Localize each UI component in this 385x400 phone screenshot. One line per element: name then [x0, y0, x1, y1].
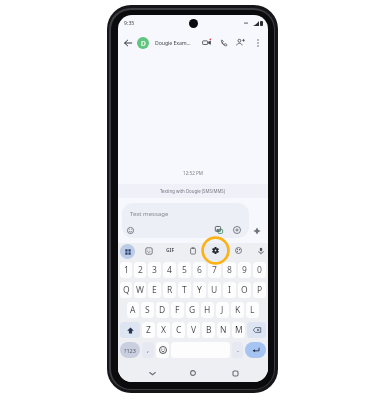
staticText: 12:52 PM: [118, 170, 268, 176]
staticText: V: [191, 324, 197, 336]
button[interactable]: Back: [144, 365, 160, 381]
staticText: 3: [152, 264, 157, 276]
button[interactable]: Stickers: [142, 244, 155, 257]
staticText: I: [228, 284, 231, 296]
staticText: 2: [138, 264, 143, 276]
button[interactable]: 2: [134, 262, 146, 278]
button[interactable]: Settings: [201, 236, 230, 265]
button[interactable]: Voice input: [254, 244, 267, 257]
staticText: A: [130, 304, 136, 316]
button[interactable]: J: [216, 302, 229, 318]
button[interactable]: 7: [208, 262, 221, 278]
button[interactable]: V: [187, 322, 200, 338]
button[interactable]: Emoji: [122, 222, 138, 238]
button[interactable]: 4: [163, 262, 176, 278]
button[interactable]: Y: [193, 282, 206, 298]
staticText: C: [176, 324, 182, 336]
button[interactable]: Emoji: [156, 342, 169, 358]
staticText: 9: [242, 264, 247, 276]
button[interactable]: 1: [120, 262, 132, 278]
button[interactable]: Shift: [120, 322, 140, 338]
button[interactable]: 8: [223, 262, 236, 278]
staticText: K: [235, 304, 241, 316]
button[interactable]: Keyboard modes: [120, 244, 135, 259]
button[interactable]: P: [253, 282, 266, 298]
button[interactable]: Themes: [232, 244, 245, 257]
staticText: P: [257, 284, 263, 296]
button[interactable]: Comma: [142, 342, 154, 358]
button[interactable]: Clipboard: [186, 244, 199, 257]
button[interactable]: GIF: [164, 244, 177, 257]
button[interactable]: 5: [178, 262, 191, 278]
button[interactable]: B: [202, 322, 215, 338]
button[interactable]: Photos: [211, 222, 227, 238]
staticText: M: [235, 324, 243, 336]
staticText: Y: [197, 284, 202, 296]
button[interactable]: Backspace: [247, 322, 266, 338]
staticText: Q: [123, 284, 130, 296]
staticText: ?123: [124, 347, 136, 354]
button[interactable]: E: [148, 282, 161, 298]
button[interactable]: O: [238, 282, 251, 298]
staticText: GIF: [166, 247, 175, 254]
button[interactable]: X: [157, 322, 170, 338]
button[interactable]: Period: [232, 342, 243, 358]
button[interactable]: Home: [185, 365, 201, 381]
button[interactable]: More options: [249, 34, 266, 51]
button[interactable]: Enter: [245, 342, 266, 358]
button[interactable]: 6: [193, 262, 206, 278]
button[interactable]: D: [156, 302, 169, 318]
staticText: G: [189, 304, 196, 316]
button[interactable]: Call: [215, 34, 232, 51]
staticText: L: [250, 304, 255, 316]
button[interactable]: Recents: [227, 365, 243, 381]
staticText: Z: [146, 324, 151, 336]
button[interactable]: T: [178, 282, 191, 298]
staticText: ,: [147, 345, 149, 355]
staticText: J: [221, 304, 224, 316]
button[interactable]: L: [246, 302, 259, 318]
button[interactable]: S: [141, 302, 154, 318]
staticText: S: [145, 304, 150, 316]
staticText: D: [141, 39, 146, 48]
staticText: T: [182, 284, 187, 296]
button[interactable]: Text message: [122, 203, 249, 238]
button[interactable]: G: [186, 302, 199, 318]
button[interactable]: F: [171, 302, 184, 318]
button[interactable]: N: [217, 322, 230, 338]
button[interactable]: Z: [142, 322, 155, 338]
button[interactable]: R: [163, 282, 176, 298]
staticText: F: [175, 304, 180, 316]
staticText: 8: [227, 264, 232, 276]
button[interactable]: D: [137, 37, 149, 49]
staticText: H: [204, 304, 211, 316]
button[interactable]: Video call: [198, 34, 215, 51]
staticText: 1: [124, 264, 129, 276]
button[interactable]: Q: [120, 282, 132, 298]
staticText: 4: [167, 264, 172, 276]
button[interactable]: Send: [249, 223, 265, 239]
button[interactable]: Add person: [232, 34, 249, 51]
button[interactable]: More attachments: [229, 222, 245, 238]
button[interactable]: H: [201, 302, 214, 318]
button[interactable]: C: [172, 322, 185, 338]
button[interactable]: W: [134, 282, 146, 298]
button[interactable]: 0: [253, 262, 266, 278]
button[interactable]: 3: [148, 262, 161, 278]
staticText: Dougie Exam...: [155, 39, 191, 46]
button[interactable]: A: [127, 302, 139, 318]
staticText: B: [206, 324, 212, 336]
staticText: W: [136, 284, 144, 296]
button[interactable]: Back: [119, 33, 136, 52]
button[interactable]: I: [223, 282, 236, 298]
staticText: 5: [182, 264, 187, 276]
button[interactable]: Symbols: [120, 342, 140, 358]
button[interactable]: M: [232, 322, 245, 338]
staticText: U: [211, 284, 218, 296]
button[interactable]: U: [208, 282, 221, 298]
staticText: R: [167, 284, 173, 296]
button[interactable]: K: [231, 302, 244, 318]
button[interactable]: 9: [238, 262, 251, 278]
staticText: 9:35: [124, 19, 135, 26]
